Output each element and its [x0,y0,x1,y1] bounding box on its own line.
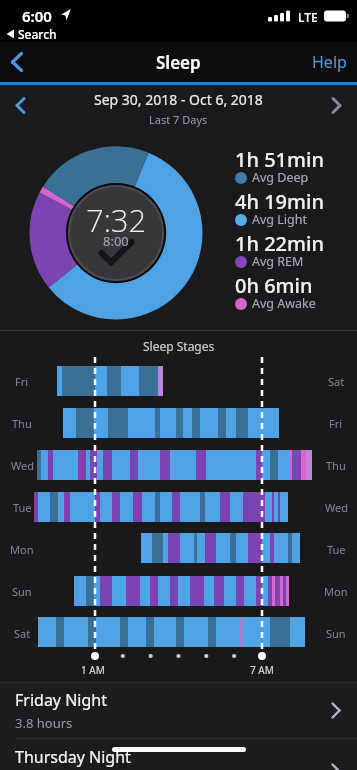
staticText: Avg Awake [252,295,316,312]
button[interactable]: Search [5,26,57,42]
staticText: LTE [298,9,318,25]
staticText: Help [312,51,347,73]
staticText: Fri [15,374,29,389]
staticText: Wed [325,500,348,515]
staticText: Thu [12,416,32,431]
staticText: Fri [329,416,343,431]
staticText: Avg REM [252,253,304,270]
staticText: Sun [326,626,346,641]
staticText: Search [18,26,57,42]
staticText: Last 7 Days [149,112,208,127]
staticText: 8:00 [103,232,129,248]
staticText: 0h 6min [235,272,313,299]
button[interactable] [313,85,357,132]
staticText: Sep 30, 2018 - Oct 6, 2018 [94,90,263,109]
staticText: Thu [326,458,346,473]
staticText: Avg Light [252,211,307,228]
staticText: 7 AM [250,663,274,677]
staticText: 3.8 hours [15,714,73,732]
staticText: 1h 51min [235,146,324,173]
button[interactable]: Thursday Night [0,739,357,770]
staticText: Avg Deep [252,169,309,186]
staticText: 4h 19min [235,188,324,215]
staticText: Friday Night [15,689,107,711]
staticText: 1 AM [81,663,105,677]
staticText: Sleep [156,51,201,74]
staticText: Tue [13,500,32,515]
staticText: Wed [11,458,34,473]
staticText: 1h 22min [235,230,324,257]
staticText: Mon [10,542,34,557]
staticText: 6:00 [22,6,52,26]
staticText: Mon [324,584,348,599]
staticText: Sat [14,626,31,641]
button[interactable]: Friday Night [0,683,357,738]
staticText: Sun [12,584,32,599]
staticText: Sleep Stages [143,338,215,354]
button[interactable] [0,42,44,82]
staticText: 7:32 [86,199,147,239]
button[interactable] [0,85,44,132]
staticText: Thursday Night [15,746,131,768]
staticText: Tue [327,542,346,557]
button[interactable]: Help [312,51,347,73]
staticText: Sat [328,374,345,389]
